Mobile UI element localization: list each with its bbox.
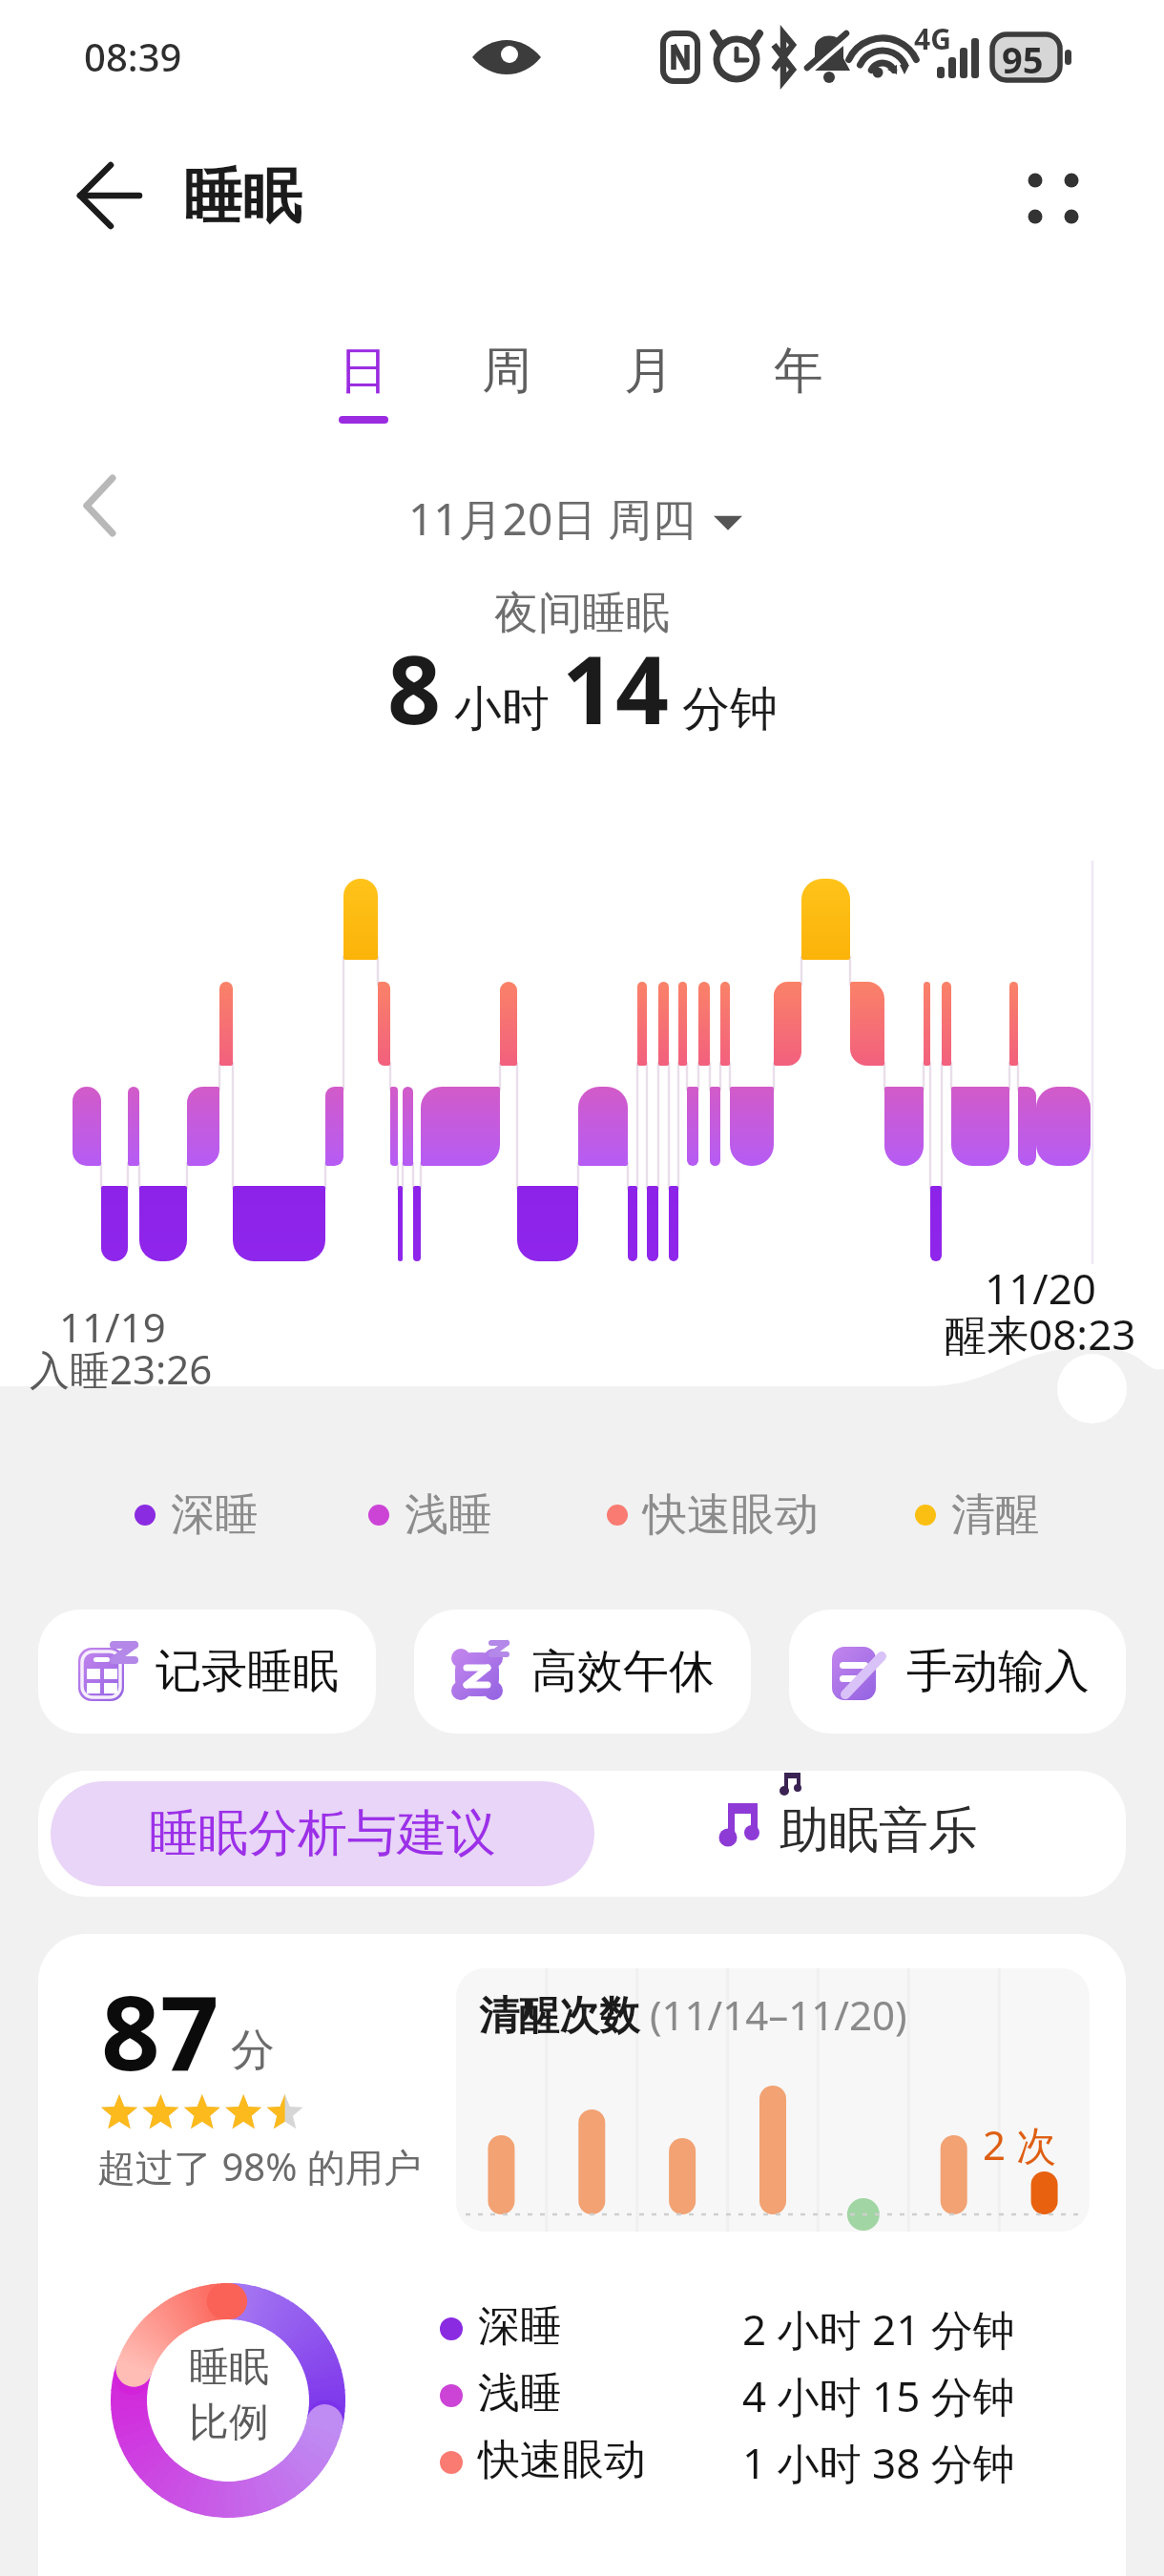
staticText: 14 bbox=[562, 624, 670, 751]
staticText: 08:39 bbox=[84, 31, 182, 82]
staticText: 快速眼动 bbox=[643, 1487, 819, 1543]
button[interactable]: More options bbox=[1009, 155, 1097, 242]
button[interactable]: 助眠音乐 bbox=[611, 1771, 1126, 1897]
button[interactable]: 月 bbox=[601, 340, 696, 464]
staticText: 1 小时 38 分钟 bbox=[742, 2434, 1015, 2491]
staticText: 记录睡眠 bbox=[156, 1643, 339, 1700]
button[interactable]: 周 bbox=[459, 340, 554, 464]
button[interactable]: 深睡 bbox=[135, 1485, 259, 1545]
button[interactable]: 手动输入 bbox=[789, 1610, 1126, 1734]
staticText: 清醒 bbox=[951, 1487, 1039, 1543]
staticText: 深睡 bbox=[478, 2300, 562, 2353]
button[interactable]: 浅睡 bbox=[368, 1485, 492, 1545]
staticText: 浅睡 bbox=[478, 2367, 562, 2420]
staticText: 2 小时 21 分钟 bbox=[742, 2300, 1015, 2358]
button[interactable]: Expand bbox=[1057, 1354, 1127, 1423]
staticText: 4 小时 15 分钟 bbox=[742, 2367, 1015, 2424]
button[interactable]: 清醒 bbox=[915, 1485, 1039, 1545]
staticText: 年 bbox=[774, 340, 823, 403]
button[interactable]: 快速眼动 bbox=[607, 1485, 819, 1545]
staticText: 分 bbox=[219, 2018, 275, 2078]
staticText: 小时 bbox=[442, 675, 562, 739]
staticText: 睡眠分析与建议 bbox=[149, 1802, 496, 1865]
staticText: 夜间睡眠 bbox=[494, 586, 670, 641]
staticText: 月 bbox=[624, 340, 674, 403]
button[interactable]: 11月20日 周四 bbox=[408, 488, 742, 549]
button[interactable]: Back bbox=[67, 153, 153, 239]
staticText: 日 bbox=[339, 340, 388, 403]
staticText: 11/20 bbox=[985, 1259, 1097, 1317]
staticText: 87 bbox=[101, 1961, 219, 2101]
button[interactable]: 睡眠分析与建议 bbox=[51, 1781, 594, 1886]
staticText: (11/14–11/20) bbox=[639, 1987, 907, 2042]
staticText: 11/19 bbox=[59, 1299, 166, 1354]
staticText: 睡眠 bbox=[183, 159, 301, 234]
staticText: 4G bbox=[914, 19, 951, 58]
staticText: 周 bbox=[482, 340, 531, 403]
staticText: 浅睡 bbox=[405, 1487, 492, 1543]
staticText: 高效午休 bbox=[531, 1643, 715, 1700]
button[interactable]: 日 bbox=[316, 340, 411, 464]
staticText: 深睡 bbox=[171, 1487, 259, 1543]
staticText: 分钟 bbox=[670, 675, 778, 739]
staticText: 清醒次数 bbox=[479, 1991, 639, 2042]
button[interactable]: 记录睡眠 bbox=[38, 1610, 376, 1734]
button[interactable]: Previous day bbox=[59, 460, 139, 540]
staticText: 2 次 bbox=[983, 2117, 1056, 2171]
staticText: 11月20日 周四 bbox=[408, 488, 696, 549]
staticText: 超过了 98% 的用户 bbox=[97, 2140, 422, 2192]
staticText: 入睡23:26 bbox=[30, 1341, 213, 1396]
staticText: 睡眠 比例 bbox=[181, 2342, 277, 2448]
staticText: 快速眼动 bbox=[478, 2434, 646, 2486]
staticText: 助眠音乐 bbox=[779, 1799, 978, 1862]
button[interactable]: 高效午休 bbox=[414, 1610, 751, 1734]
staticText: 手动输入 bbox=[906, 1643, 1090, 1700]
staticText: 95 bbox=[1002, 34, 1044, 84]
staticText: 8 bbox=[387, 624, 442, 751]
staticText: 醒来08:23 bbox=[945, 1305, 1136, 1362]
button[interactable]: 年 bbox=[751, 340, 846, 464]
